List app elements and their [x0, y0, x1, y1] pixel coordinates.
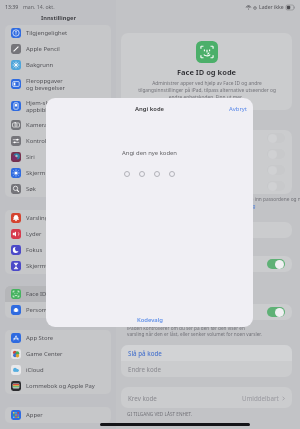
staticText: Avbryt [229, 105, 247, 113]
staticText: Tilgjengelighet [26, 29, 68, 37]
button[interactable]: Kodevalg [133, 313, 167, 327]
button[interactable] [121, 130, 292, 146]
button[interactable]: App Store [5, 330, 111, 346]
staticText: Innstillinger [41, 14, 76, 22]
staticText: Angi den nye koden [122, 149, 177, 157]
staticText: Umiddelbart [242, 394, 279, 402]
staticText: 13:39 [5, 3, 19, 10]
button[interactable] [121, 256, 292, 272]
staticText: Face ID og kode [128, 67, 285, 77]
button[interactable]: Kamera [5, 117, 111, 133]
button[interactable]: Face ID og kode [5, 286, 111, 302]
staticText: Administrer apper ved hjelp av Face ID o… [137, 80, 277, 101]
staticText: Endre kode [128, 365, 161, 373]
button[interactable] [121, 146, 292, 162]
button[interactable] [121, 178, 292, 194]
button[interactable]: Personvern og sikkerhet [5, 302, 111, 318]
staticText: iPaden kontrollerer om du ser på den før… [127, 325, 245, 331]
button[interactable]: Game Center [5, 346, 111, 362]
button[interactable]: Bakgrunn [5, 57, 111, 73]
button[interactable]: Lommebok og Apple Pay [5, 378, 111, 394]
staticText: App Store [26, 334, 54, 342]
staticText: Lommebok og Apple Pay [26, 382, 95, 390]
button[interactable]: Avbryt [223, 101, 253, 117]
button[interactable]: Tilgjengelighet [5, 25, 111, 41]
button[interactable]: Apper [5, 407, 111, 423]
button[interactable] [121, 162, 292, 178]
staticText: Krev kode [128, 394, 157, 402]
staticText: varsling når den er låst, eller senker v… [127, 331, 262, 337]
staticText: Varslinger [26, 214, 55, 222]
staticText: Lader ikke [259, 4, 284, 11]
staticText: Apper [26, 411, 43, 419]
staticText: Hjem-skjerm og appbibliotek [26, 99, 71, 114]
staticText: Apple Pencil [26, 45, 60, 53]
button[interactable]: Lyder [5, 226, 111, 242]
staticText: automatisk, i tillegg til andre ting. Le… [127, 203, 256, 210]
staticText: Game Center [26, 350, 63, 358]
staticText: Fleroppgaver og bevegelser [26, 77, 65, 92]
staticText: Personvern og sikkerhet [26, 306, 94, 314]
staticText: man. 14. okt. [23, 3, 55, 10]
button[interactable] [121, 304, 292, 320]
staticText: Skjerm og lysstyrke [26, 169, 80, 177]
button[interactable]: Kontrollsenter [5, 133, 111, 149]
button[interactable]: Hjem-skjerm og appbibliotek [5, 95, 111, 117]
button[interactable]: Krev kode [121, 387, 292, 408]
staticText: Kodevalg [137, 316, 163, 324]
staticText: Lyder [26, 230, 42, 238]
button[interactable]: Slå på kode [121, 345, 292, 361]
staticText: Slå på kode [128, 349, 162, 357]
staticText: Kontrollsenter [26, 137, 66, 145]
button[interactable]: Siri [5, 149, 111, 165]
button[interactable]: Skjermtid [5, 258, 111, 274]
staticText: Siri [26, 153, 35, 161]
button[interactable]: iCloud [5, 362, 111, 378]
button[interactable]: Søk [5, 181, 111, 197]
staticText: Face ID og kode [26, 290, 71, 298]
staticText: Kamera [26, 121, 48, 129]
staticText: GI TILGANG VED LÅST ENHET. [127, 411, 193, 417]
button[interactable]: Endre kode [121, 361, 292, 377]
staticText: Bruk Face ID for å låse opp iPad, godkje… [127, 196, 300, 203]
staticText: Fokus [26, 246, 43, 254]
staticText: Søk [26, 185, 36, 193]
staticText: Angi kode [135, 105, 165, 113]
staticText: iCloud [26, 366, 44, 374]
button[interactable]: Apple Pencil [5, 41, 111, 57]
staticText: Skjermtid [26, 262, 53, 270]
button[interactable]: Skjerm og lysstyrke [5, 165, 111, 181]
button[interactable]: Varslinger [5, 210, 111, 226]
staticText: Bakgrunn [26, 61, 54, 69]
button[interactable]: Fokus [5, 242, 111, 258]
button[interactable]: Fleroppgaver og bevegelser [5, 73, 111, 95]
